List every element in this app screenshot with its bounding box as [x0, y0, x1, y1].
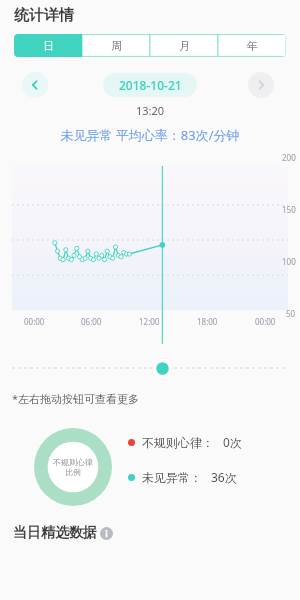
staticText: 未见异常 平均心率：83次/分钟 — [0, 126, 300, 144]
button[interactable]: 日 — [14, 34, 82, 57]
staticText: 当日精选数据 — [13, 524, 97, 542]
staticText: 06:00 — [81, 316, 102, 327]
staticText: 统计详情 — [14, 6, 74, 25]
staticText: 200 — [282, 152, 296, 163]
staticText: 不规则心律 — [53, 457, 93, 467]
staticText: 36次 — [211, 469, 237, 485]
staticText: 12:00 — [139, 316, 160, 327]
button[interactable]: Drag to scroll chart — [152, 358, 173, 379]
button[interactable]: 周 — [82, 34, 150, 57]
button[interactable]: 2018-10-21 — [103, 73, 197, 97]
button[interactable]: Previous day — [22, 72, 48, 98]
staticText: 未见异常： — [142, 470, 202, 485]
button[interactable]: 月 — [150, 34, 218, 57]
staticText: 50 — [286, 308, 296, 319]
staticText: 2018-10-21 — [119, 77, 182, 93]
staticText: 18:00 — [197, 316, 218, 327]
staticText: 周 — [111, 39, 122, 53]
staticText: *左右拖动按钮可查看更多 — [12, 391, 140, 406]
button[interactable]: 未见异常： — [128, 469, 237, 485]
staticText: 13:20 — [0, 103, 300, 118]
staticText: 150 — [282, 204, 296, 215]
staticText: 比例 — [65, 467, 81, 477]
staticText: 年 — [247, 39, 258, 53]
staticText: 不规则心律： — [142, 435, 214, 450]
staticText: 100 — [282, 256, 296, 267]
button[interactable]: 不规则心律： — [128, 434, 242, 450]
button[interactable]: 年 — [218, 34, 286, 57]
staticText: 日 — [43, 39, 54, 53]
staticText: 0次 — [223, 434, 242, 450]
staticText: 00:00 — [255, 316, 276, 327]
staticText: 月 — [179, 39, 190, 53]
button[interactable]: Information — [100, 527, 113, 540]
button[interactable]: Next day — [248, 72, 274, 98]
staticText: 00:00 — [24, 316, 45, 327]
